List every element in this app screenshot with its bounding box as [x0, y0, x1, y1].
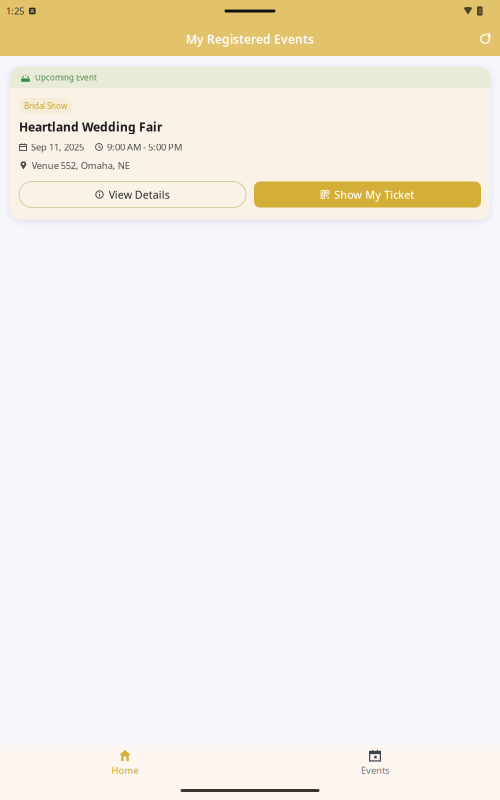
staticText: Heartland Wedding Fair — [19, 119, 162, 135]
button[interactable]: Show My Ticket — [254, 181, 481, 207]
button[interactable]: View Details — [19, 181, 246, 207]
staticText: A — [30, 7, 34, 15]
button[interactable]: Events — [250, 748, 500, 778]
staticText: Upcoming Event — [35, 72, 97, 83]
staticText: Show My Ticket — [334, 187, 414, 202]
staticText: 9:00 AM - 5:00 PM — [107, 141, 182, 153]
staticText: Events — [361, 764, 389, 776]
staticText: Bridal Show — [24, 101, 67, 111]
staticText: 1:25 — [6, 5, 24, 17]
staticText: My Registered Events — [186, 31, 314, 47]
staticText: Home — [111, 764, 138, 776]
staticText: View Details — [109, 187, 170, 202]
button[interactable]: Home — [0, 748, 250, 778]
button[interactable]: Refresh — [471, 25, 499, 53]
staticText: Sep 11, 2025 — [31, 141, 84, 153]
staticText: Venue 552, Omaha, NE — [32, 159, 130, 172]
